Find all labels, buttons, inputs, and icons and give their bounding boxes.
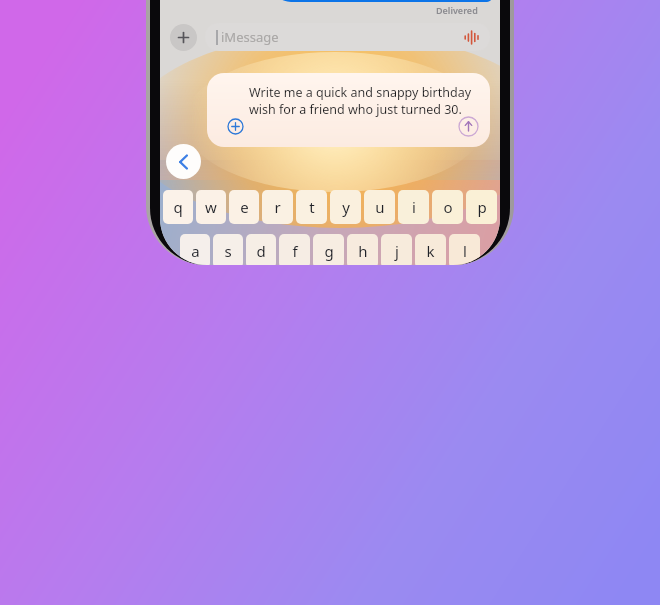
staticText: h xyxy=(358,241,368,261)
button[interactable]: k xyxy=(415,234,446,265)
staticText: j xyxy=(395,241,399,261)
button[interactable]: a xyxy=(180,234,210,265)
button[interactable]: g xyxy=(313,234,344,265)
button[interactable]: u xyxy=(364,190,395,224)
button[interactable]: y xyxy=(330,190,361,224)
staticText: Write me a quick and snappy birthday wis… xyxy=(249,84,477,118)
staticText: k xyxy=(426,241,435,261)
button[interactable]: q xyxy=(163,190,193,224)
staticText: d xyxy=(256,241,266,261)
staticText: i xyxy=(412,197,416,217)
button[interactable]: e xyxy=(229,190,259,224)
staticText: iMessage xyxy=(221,28,279,46)
staticText: y xyxy=(342,197,350,217)
other: Audio message xyxy=(464,31,479,44)
staticText: w xyxy=(205,197,217,217)
staticText: g xyxy=(324,241,334,261)
button[interactable]: Write me a quick and snappy birthday wis… xyxy=(207,73,490,147)
staticText: u xyxy=(375,197,385,217)
button[interactable]: d xyxy=(246,234,276,265)
staticText: e xyxy=(240,197,249,217)
staticText: f xyxy=(292,241,298,261)
button[interactable]: Add to message xyxy=(227,118,244,135)
staticText: l xyxy=(463,241,467,261)
button[interactable]: l xyxy=(449,234,480,265)
staticText: q xyxy=(173,197,183,217)
staticText: p xyxy=(477,197,487,217)
button[interactable]: r xyxy=(262,190,293,224)
button[interactable]: w xyxy=(196,190,226,224)
staticText: a xyxy=(191,241,200,261)
button[interactable]: i xyxy=(398,190,429,224)
button[interactable]: s xyxy=(213,234,243,265)
button[interactable]: iMessage xyxy=(205,23,490,51)
staticText: s xyxy=(224,241,232,261)
staticText: Delivered xyxy=(436,4,478,16)
button[interactable]: Back xyxy=(166,144,201,179)
button[interactable]: Add attachment xyxy=(170,24,197,51)
button[interactable]: f xyxy=(279,234,310,265)
button[interactable]: Send xyxy=(458,116,479,137)
button[interactable]: h xyxy=(347,234,378,265)
staticText: o xyxy=(443,197,453,217)
button[interactable]: p xyxy=(466,190,497,224)
staticText: t xyxy=(309,197,315,217)
button[interactable]: o xyxy=(432,190,463,224)
staticText: r xyxy=(274,197,281,217)
button[interactable]: j xyxy=(381,234,412,265)
button[interactable]: t xyxy=(296,190,327,224)
